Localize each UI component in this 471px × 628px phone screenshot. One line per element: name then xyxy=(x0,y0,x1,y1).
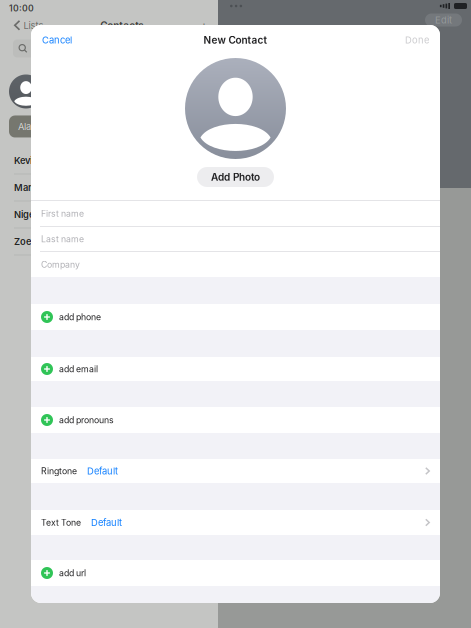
staticText: 10:00 xyxy=(9,3,34,13)
staticText: First name xyxy=(41,208,84,219)
button[interactable]: First name xyxy=(31,201,440,226)
staticText: Kevin Adams xyxy=(14,155,71,166)
staticText: Add Photo xyxy=(211,171,260,183)
staticText: add pronouns xyxy=(59,415,114,425)
staticText: add phone xyxy=(59,312,101,322)
staticText: Nigel Chen xyxy=(14,209,64,220)
button[interactable]: Last name xyxy=(31,227,440,251)
staticText: + xyxy=(200,18,208,33)
button[interactable]: Add Photo xyxy=(197,167,274,187)
button[interactable]: Edit xyxy=(425,13,462,26)
staticText: Lists xyxy=(23,20,43,31)
button[interactable]: add pronouns xyxy=(31,407,440,433)
staticText: Company xyxy=(41,259,80,270)
button[interactable]: Ringtone xyxy=(31,459,440,483)
staticText: add url xyxy=(59,568,86,578)
button[interactable]: add phone xyxy=(31,304,440,330)
staticText: Zoe Davis xyxy=(14,236,58,247)
staticText: Default xyxy=(87,465,118,477)
staticText: Ringtone xyxy=(41,466,77,476)
staticText: Last name xyxy=(41,234,84,244)
staticText: New Contact xyxy=(203,34,267,46)
staticText: Done xyxy=(405,34,429,46)
button[interactable]: add email xyxy=(31,357,440,381)
button[interactable]: add url xyxy=(31,560,440,586)
staticText: Contacts xyxy=(100,19,143,31)
button[interactable]: Done xyxy=(395,25,440,55)
staticText: Search xyxy=(31,43,62,54)
staticText: Cancel xyxy=(42,34,72,46)
staticText: Default xyxy=(91,517,122,528)
button[interactable]: Company xyxy=(31,252,440,277)
button[interactable]: Cancel xyxy=(31,25,82,55)
staticText: Marcus Bell xyxy=(14,182,66,193)
staticText: Edit xyxy=(435,14,452,26)
staticText: add email xyxy=(59,364,98,374)
staticText: Alan Appleseed xyxy=(18,121,86,132)
staticText: Text Tone xyxy=(41,517,81,528)
button[interactable]: Text Tone xyxy=(31,510,440,535)
